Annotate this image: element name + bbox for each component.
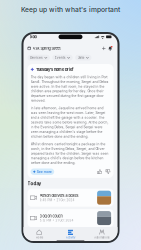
staticText: Person delivers a boxes [39, 193, 78, 198]
staticText: Devices [30, 56, 43, 60]
staticText: In late afternoon, Jaqueline arrived hom… [30, 106, 108, 139]
staticText: Activity [66, 236, 75, 239]
button[interactable]: Dog on couch [27, 209, 113, 227]
button[interactable]: Events [52, 55, 73, 61]
button[interactable]: Activity [55, 229, 86, 239]
button[interactable]: Person delivers a boxes [27, 189, 113, 207]
button[interactable]: Ask Spring Street [27, 46, 60, 51]
staticText: Today [27, 181, 41, 186]
button[interactable]: Date [75, 55, 91, 61]
staticText: Tuesday's home brief [36, 67, 74, 72]
button[interactable]: Devices [27, 55, 50, 61]
staticText: Dog on couch [39, 214, 62, 218]
button[interactable]: See more [30, 168, 54, 175]
staticText: See more [37, 170, 52, 174]
staticText: Keep up with what's important [21, 5, 120, 14]
staticText: The day began with a children still livi… [30, 75, 108, 103]
staticText: Date [77, 56, 84, 60]
staticText: Events [55, 56, 66, 60]
button[interactable]: Add [100, 46, 108, 50]
staticText: Home [36, 236, 43, 239]
staticText: Automations [94, 236, 109, 239]
staticText: 9:00 [29, 35, 36, 39]
staticText: Ask Spring Street [32, 46, 60, 51]
button[interactable]: Not helpful [105, 169, 110, 174]
button[interactable]: Helpful [97, 169, 102, 174]
staticText: Whilst dinners carried tonight a package… [30, 142, 108, 165]
button[interactable]: Notifications [108, 46, 112, 51]
button[interactable]: Automations [86, 229, 117, 239]
staticText: 8:12 PM • 21 Oct 2024 [39, 219, 73, 222]
button[interactable]: Home [23, 229, 55, 239]
staticText: 9:45 PM • 21 Oct 2024 [39, 198, 74, 202]
